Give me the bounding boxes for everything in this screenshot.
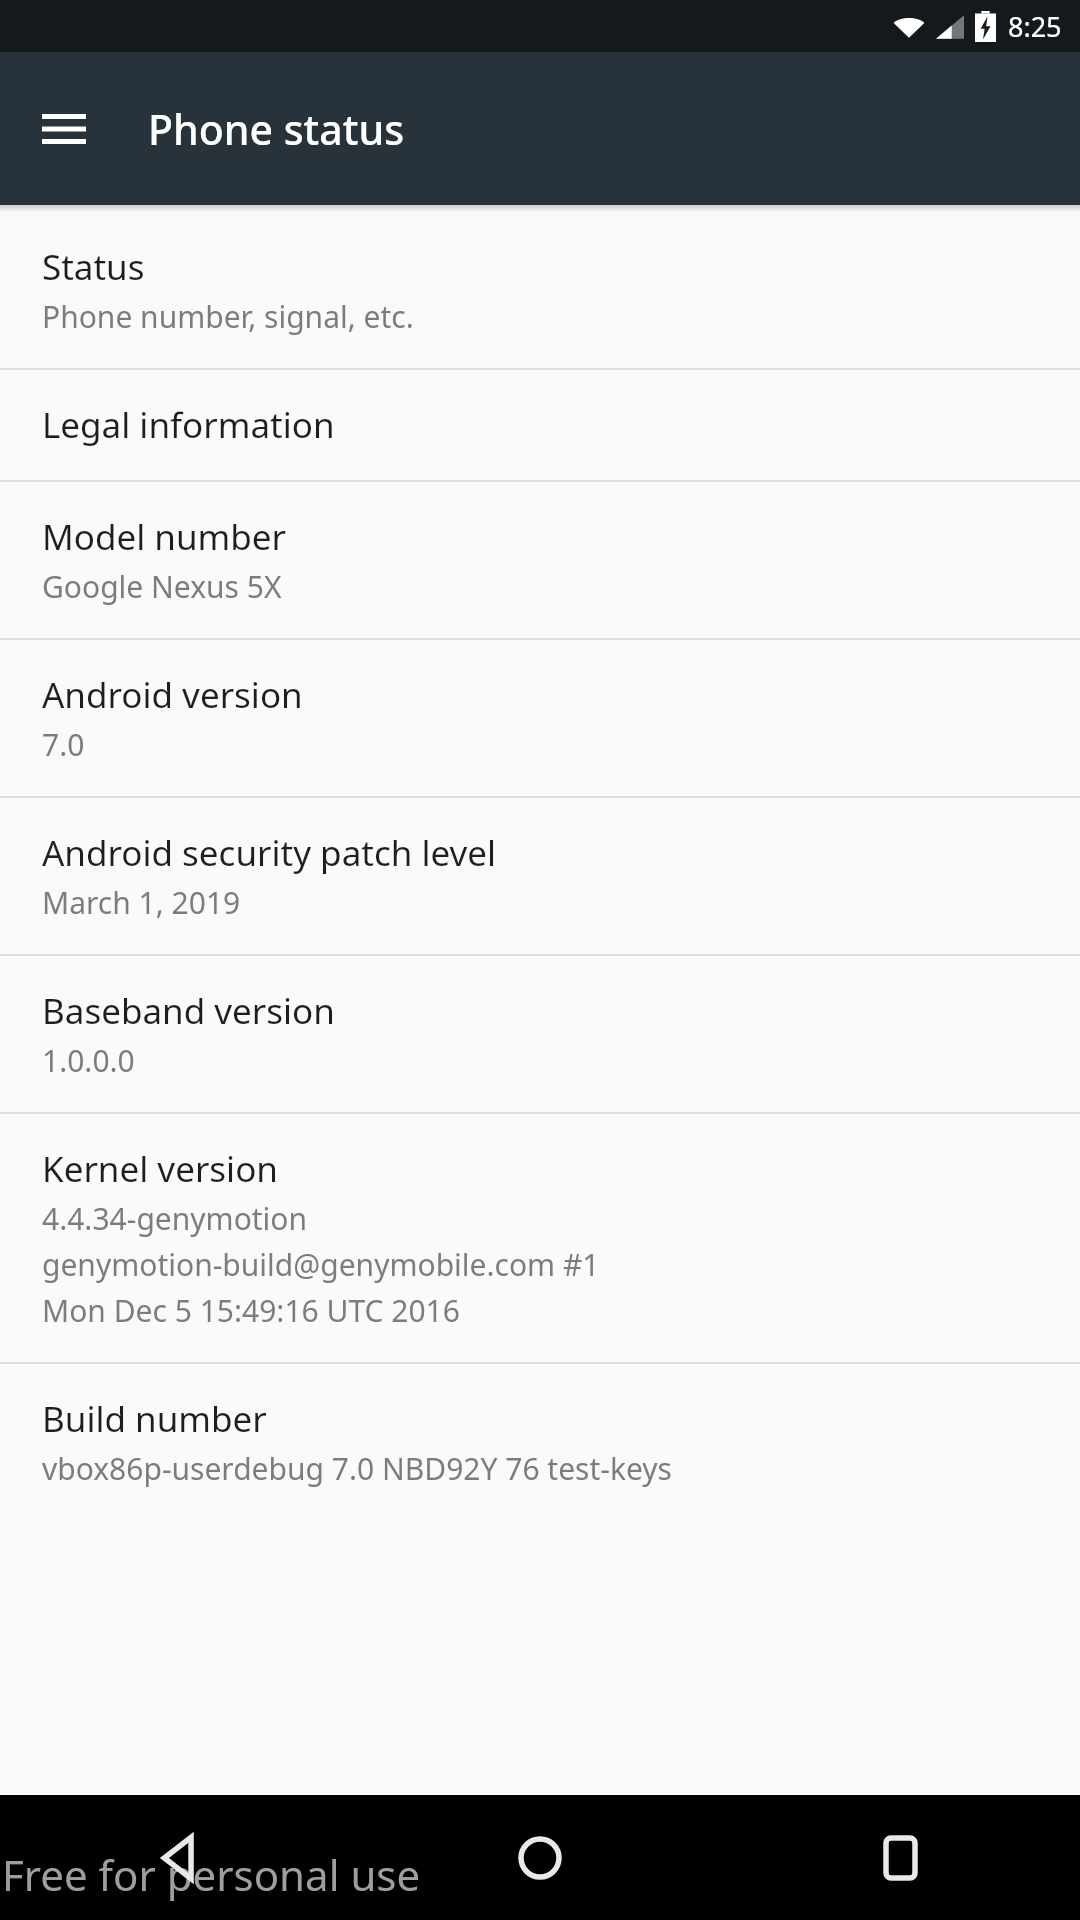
staticText: Google Nexus 5X bbox=[42, 566, 282, 607]
button[interactable]: Android version bbox=[0, 640, 1080, 796]
staticText: Android version bbox=[42, 671, 303, 719]
button[interactable]: Legal information bbox=[0, 370, 1080, 480]
button[interactable]: Android security patch level bbox=[0, 798, 1080, 954]
staticText: Baseband version bbox=[42, 987, 335, 1035]
staticText: Build number bbox=[42, 1395, 267, 1443]
staticText: Phone status bbox=[148, 101, 405, 157]
staticText: vbox86p-userdebug 7.0 NBD92Y 76 test-key… bbox=[42, 1448, 672, 1489]
staticText: Kernel version bbox=[42, 1145, 278, 1193]
staticText: 8:25 bbox=[1008, 8, 1062, 45]
staticText: Model number bbox=[42, 513, 287, 561]
button[interactable]: Back bbox=[0, 1795, 360, 1920]
staticText: 1.0.0.0 bbox=[42, 1040, 135, 1081]
button[interactable]: Status bbox=[0, 212, 1080, 368]
staticText: Phone number, signal, etc. bbox=[42, 296, 414, 337]
staticText: Android security patch level bbox=[42, 829, 497, 877]
staticText: 7.0 bbox=[42, 724, 85, 765]
staticText: genymotion-build@genymobile.com #1 bbox=[42, 1244, 600, 1285]
staticText: Free for personal use bbox=[2, 1846, 421, 1903]
button[interactable]: Home bbox=[360, 1795, 720, 1920]
staticText: Legal information bbox=[42, 401, 335, 449]
staticText: Status bbox=[42, 243, 145, 291]
button[interactable]: Open navigation menu bbox=[26, 91, 102, 167]
staticText: March 1, 2019 bbox=[42, 882, 241, 923]
staticText: 4.4.34-genymotion bbox=[42, 1198, 308, 1239]
button[interactable]: Build number bbox=[0, 1364, 1080, 1520]
button[interactable]: Kernel version bbox=[0, 1114, 1080, 1362]
button[interactable]: Recent apps bbox=[720, 1795, 1080, 1920]
staticText: Mon Dec 5 15:49:16 UTC 2016 bbox=[42, 1290, 460, 1331]
button[interactable]: Baseband version bbox=[0, 956, 1080, 1112]
button[interactable]: Model number bbox=[0, 482, 1080, 638]
